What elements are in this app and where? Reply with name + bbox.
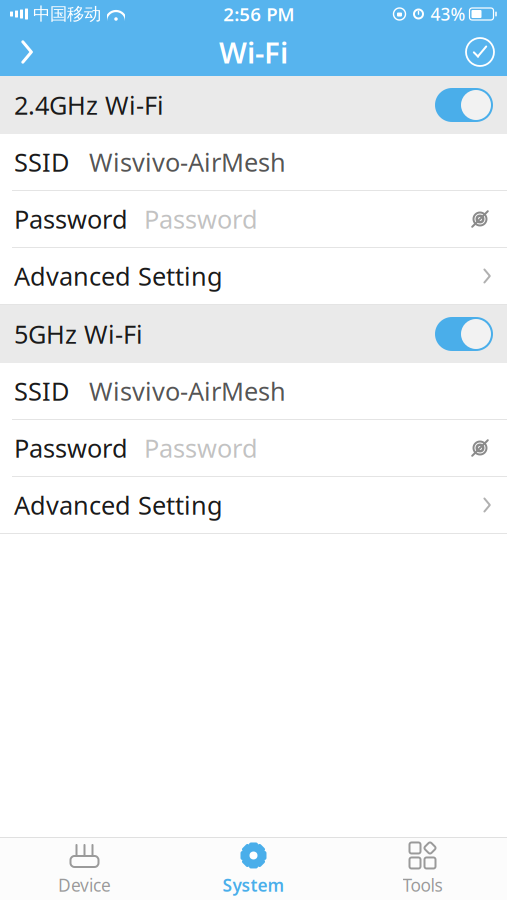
button[interactable]: Password (0, 420, 507, 476)
button[interactable]: SSID (0, 134, 507, 190)
button[interactable]: Tools (338, 838, 507, 900)
staticText: Password (144, 431, 258, 465)
staticText: Advanced Setting (14, 259, 223, 293)
staticText: SSID (14, 145, 69, 179)
staticText: Password (144, 202, 258, 236)
button[interactable]: 2.4GHz Wi-Fi (0, 76, 507, 134)
button[interactable]: System (169, 838, 338, 900)
staticText: 2:56 PM (223, 2, 294, 26)
staticText: SSID (14, 374, 69, 408)
button[interactable]: Device (0, 838, 169, 900)
staticText: 中国移动 (33, 3, 101, 25)
button[interactable]: Save (453, 28, 507, 76)
staticText: Wisvivo-AirMesh (89, 145, 286, 179)
button[interactable]: Back (0, 28, 54, 76)
staticText: Wi-Fi (219, 32, 288, 71)
staticText: System (222, 873, 284, 896)
staticText: 43% (430, 2, 465, 25)
button[interactable]: Password (0, 191, 507, 247)
staticText: Wisvivo-AirMesh (89, 374, 286, 408)
staticText: Tools (402, 873, 442, 896)
button[interactable]: Advanced Setting (0, 248, 507, 304)
staticText: Password (14, 202, 128, 236)
staticText: 2.4GHz Wi-Fi (14, 88, 164, 122)
staticText: Device (58, 873, 111, 896)
button[interactable]: 5GHz Wi-Fi (0, 305, 507, 363)
staticText: 5GHz Wi-Fi (14, 317, 143, 351)
staticText: Advanced Setting (14, 488, 223, 522)
button[interactable]: SSID (0, 363, 507, 419)
staticText: Password (14, 431, 128, 465)
button[interactable]: Advanced Setting (0, 477, 507, 533)
